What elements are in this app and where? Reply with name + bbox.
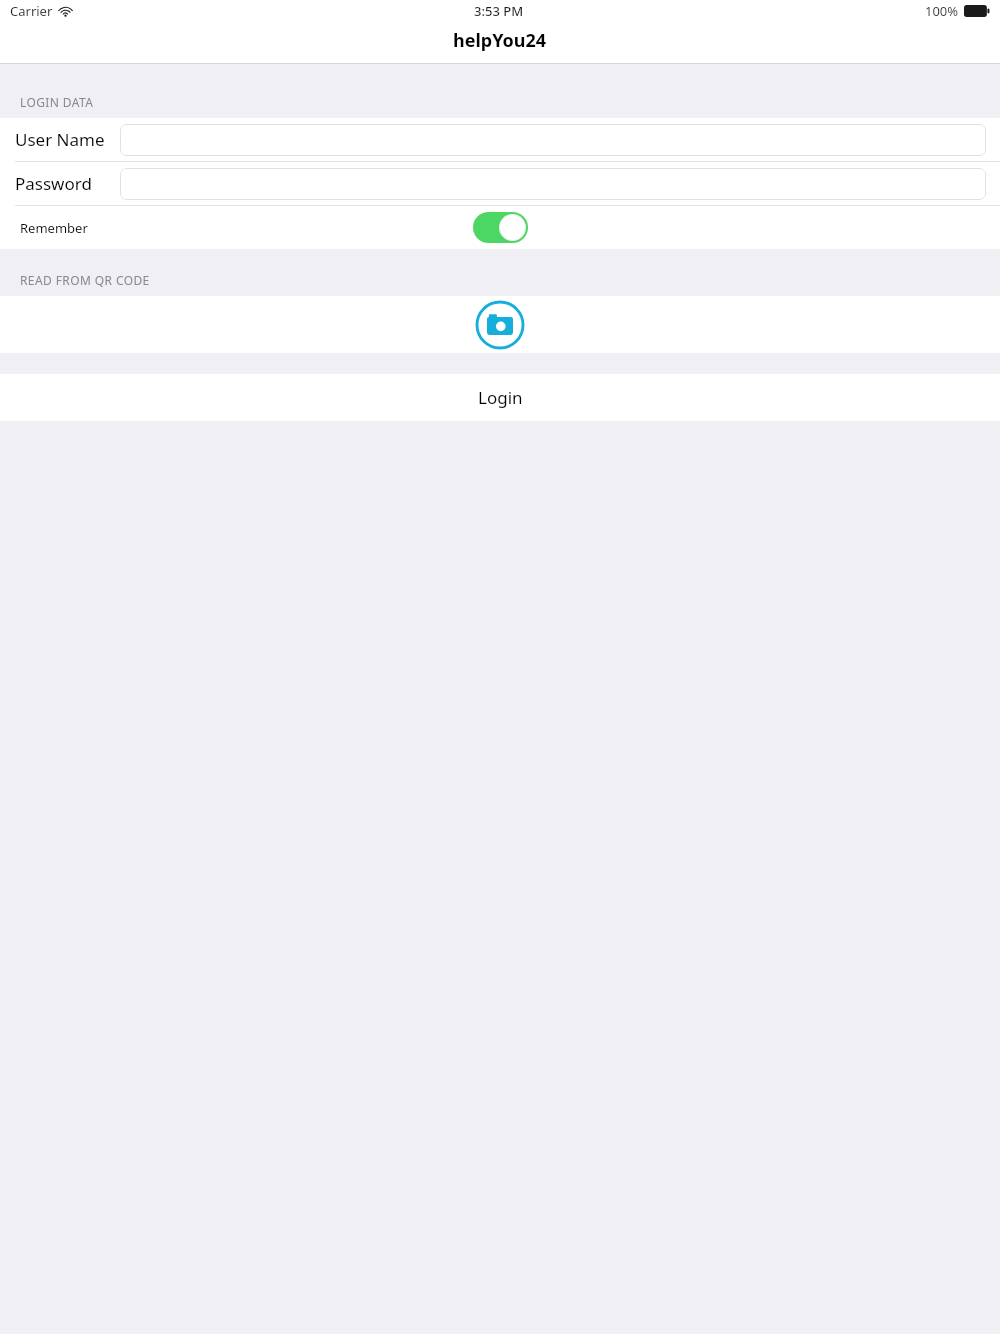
button[interactable]: User Name bbox=[0, 118, 1000, 161]
button[interactable]: Remember bbox=[0, 206, 1000, 249]
staticText: Login bbox=[478, 386, 523, 409]
staticText: Carrier bbox=[10, 2, 53, 20]
staticText: User Name bbox=[15, 128, 105, 151]
staticText: helpYou24 bbox=[453, 28, 547, 53]
staticText: 100% bbox=[925, 2, 959, 20]
staticText: 3:53 PM bbox=[474, 2, 524, 20]
button[interactable]: Login bbox=[0, 374, 1000, 421]
button[interactable]: Remember toggle, on bbox=[473, 212, 528, 243]
button[interactable]: Scan QR code with camera bbox=[0, 296, 1000, 353]
staticText: READ FROM QR CODE bbox=[20, 272, 150, 288]
staticText: Password bbox=[15, 172, 92, 195]
staticText: LOGIN DATA bbox=[20, 94, 94, 110]
staticText: Remember bbox=[20, 219, 88, 237]
button[interactable]: Password bbox=[0, 162, 1000, 205]
